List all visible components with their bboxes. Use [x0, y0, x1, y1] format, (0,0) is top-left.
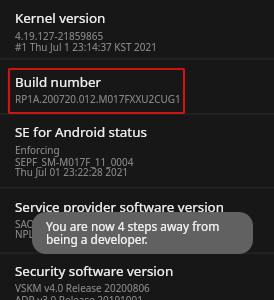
staticText: Security software version [15, 262, 174, 280]
button[interactable] [0, 113, 274, 187]
button[interactable] [0, 253, 274, 300]
button[interactable] [0, 0, 274, 59]
staticText: SE for Android status [15, 123, 147, 141]
staticText: VSKM v4.0 Release 20200806 [15, 281, 150, 295]
button[interactable] [32, 212, 253, 254]
staticText: Kernel version [15, 9, 106, 27]
staticText: Thu Jul 01 23:22:28 2021 [15, 165, 129, 179]
staticText: NPL/NPL,NPL/NPL,NPL/NPL [15, 227, 145, 241]
staticText: RP1A.200720.012.M017FXXU2CUG1 [15, 92, 181, 106]
button[interactable] [0, 187, 274, 252]
staticText: Enforcing [15, 143, 60, 157]
staticText: being a developer. [46, 231, 148, 247]
staticText: ADP v3.0 Release 20191001 [15, 293, 143, 300]
staticText: You are now 4 steps away from [46, 218, 220, 234]
staticText: Service provider software version [15, 198, 224, 216]
staticText: SAOMC_SM-M017F_OPEN_11_0011 [15, 217, 178, 231]
staticText: #1 Thu Jul 1 23:14:37 KST 2021 [15, 40, 157, 54]
staticText: Build number [15, 73, 101, 91]
staticText: SEPF_SM-M017F_11_0004 [15, 155, 134, 169]
staticText: 4.19.127-21859865 [15, 29, 104, 43]
button[interactable] [0, 59, 274, 114]
